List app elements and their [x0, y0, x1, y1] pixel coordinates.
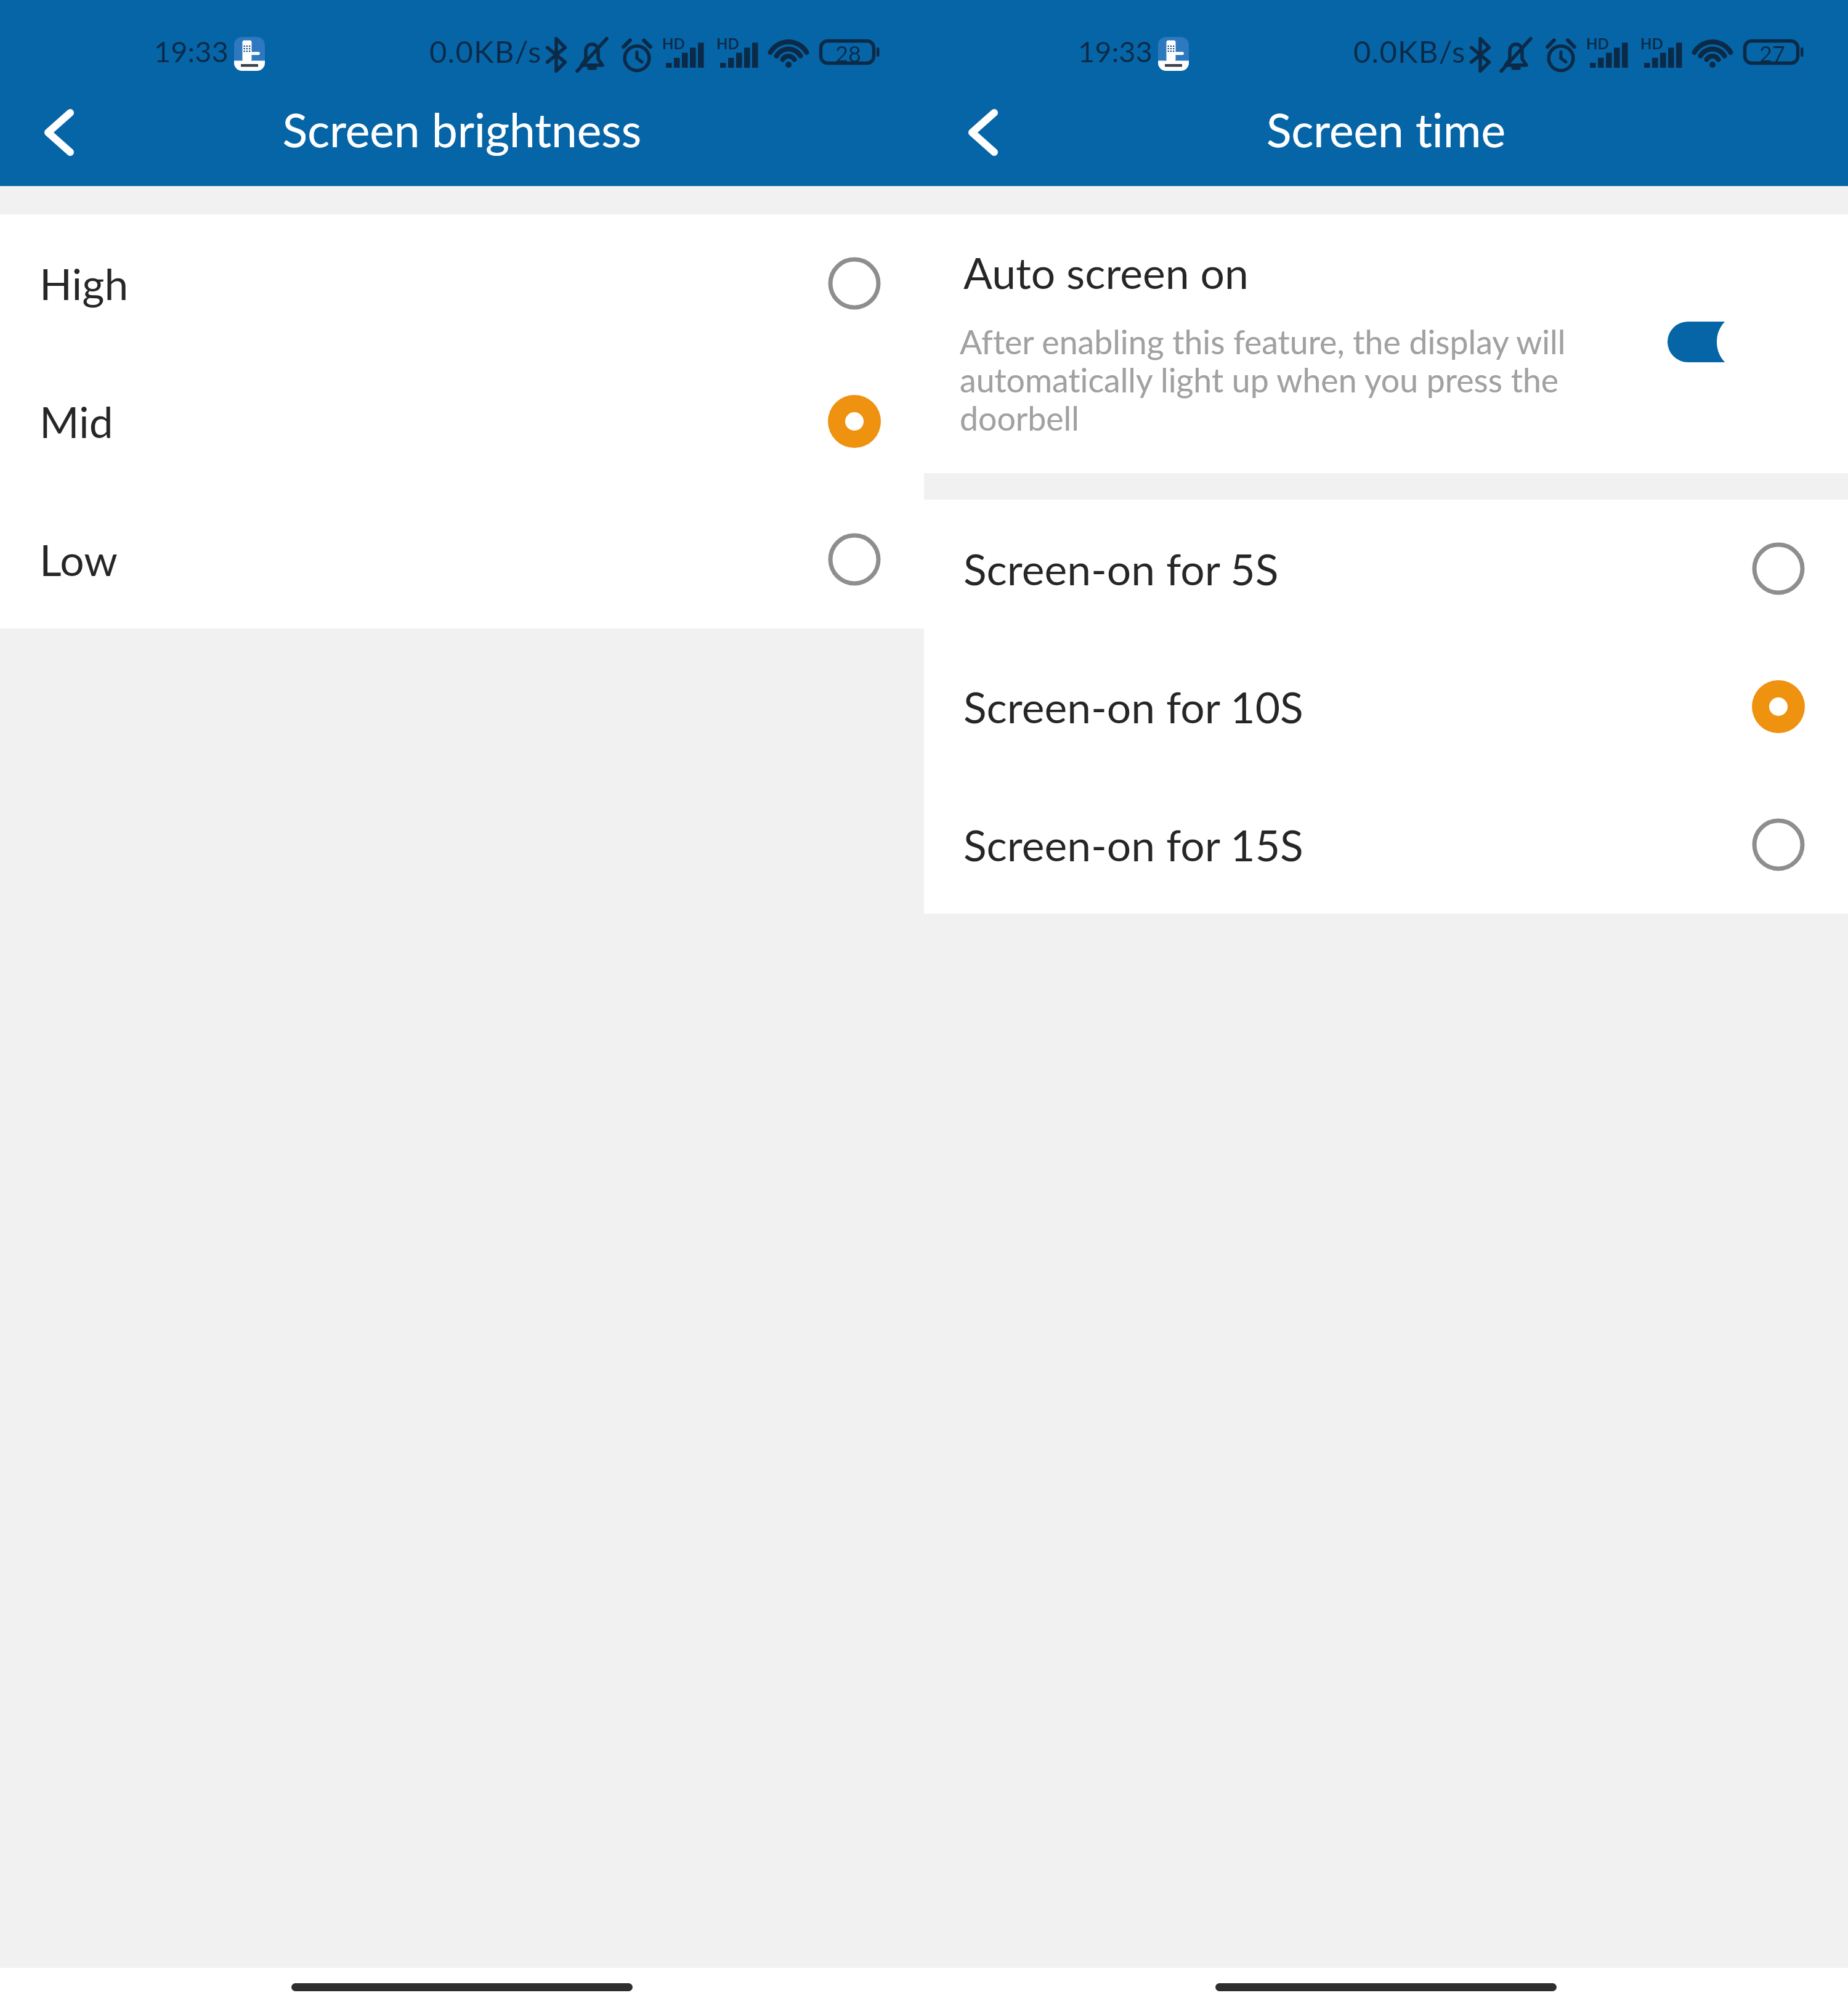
staticText: Screen brightness: [0, 102, 924, 157]
staticText: HD: [1586, 35, 1609, 52]
staticText: HD: [1640, 35, 1663, 52]
button[interactable]: Screen-on for 5S: [924, 500, 1848, 638]
staticText: Low: [39, 534, 828, 585]
staticText: 27: [1759, 40, 1785, 65]
staticText: After enabling this feature, the display…: [960, 322, 1566, 437]
button[interactable]: Home: [1215, 1983, 1557, 1991]
button[interactable]: Auto screen on toggle: [1668, 305, 1791, 379]
button[interactable]: Home: [291, 1983, 633, 1991]
button[interactable]: Low: [0, 490, 924, 628]
staticText: High: [39, 258, 828, 309]
staticText: HD: [662, 35, 685, 52]
staticText: Screen-on for 5S: [963, 543, 1752, 595]
staticText: Mid: [39, 396, 828, 447]
staticText: 19:33: [154, 34, 229, 68]
staticText: 0.0KB/s: [429, 33, 542, 70]
staticText: 0.0KB/s: [1353, 33, 1466, 70]
button[interactable]: Auto screen on: [924, 214, 1848, 473]
button[interactable]: Screen-on for 10S: [924, 638, 1848, 776]
staticText: Screen time: [924, 102, 1848, 157]
button[interactable]: Mid: [0, 352, 924, 490]
staticText: Screen-on for 10S: [963, 681, 1752, 733]
staticText: Screen-on for 15S: [963, 819, 1752, 871]
staticText: 28: [835, 40, 861, 65]
button[interactable]: Screen-on for 15S: [924, 776, 1848, 914]
staticText: 19:33: [1078, 34, 1153, 68]
button[interactable]: Back: [946, 95, 1020, 169]
staticText: Auto screen on: [963, 246, 1249, 298]
staticText: HD: [716, 35, 739, 52]
button[interactable]: Back: [22, 95, 96, 169]
button[interactable]: High: [0, 214, 924, 352]
